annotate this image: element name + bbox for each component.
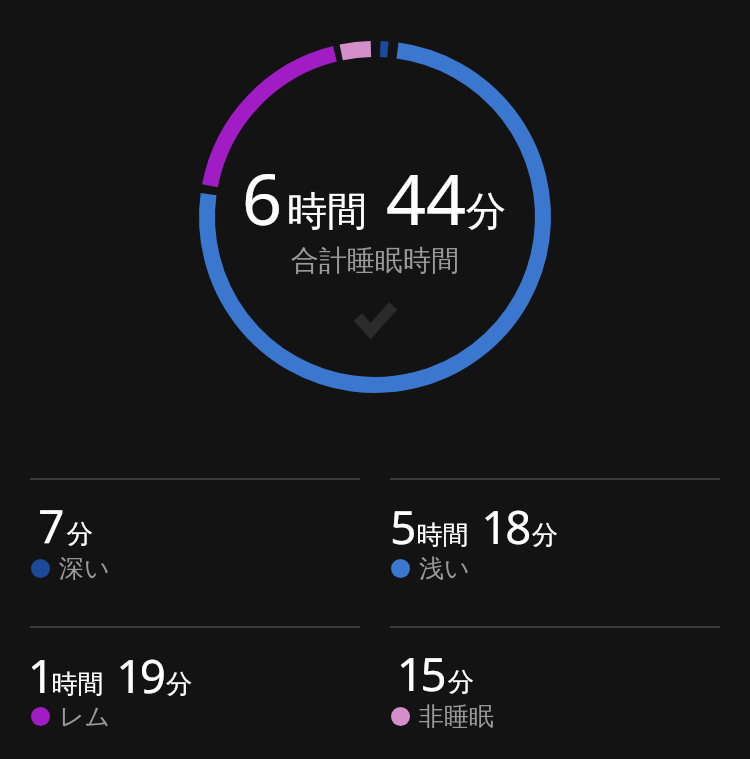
staticText: 非睡眠 [419, 701, 494, 732]
button[interactable]: 7 分 [30, 478, 360, 626]
staticText: 深い [59, 553, 110, 584]
staticText: 5時間 18分 [390, 478, 558, 562]
staticText: 7 分 [40, 494, 93, 557]
staticText: 6 時間 44分 [242, 148, 507, 246]
staticText: 合計睡眠時間 [291, 243, 459, 278]
staticText: 1時間 19分 [31, 627, 193, 711]
button[interactable]: 1時間 19分 [30, 626, 360, 759]
button[interactable]: 15 分 [390, 626, 720, 759]
staticText: レム [59, 701, 111, 732]
button[interactable]: 5時間 18分 [390, 478, 720, 626]
button[interactable]: Sleep summary: 6 hours 44 minutes total … [199, 41, 551, 393]
staticText: 浅い [419, 553, 470, 584]
staticText: 15 分 [400, 642, 474, 705]
